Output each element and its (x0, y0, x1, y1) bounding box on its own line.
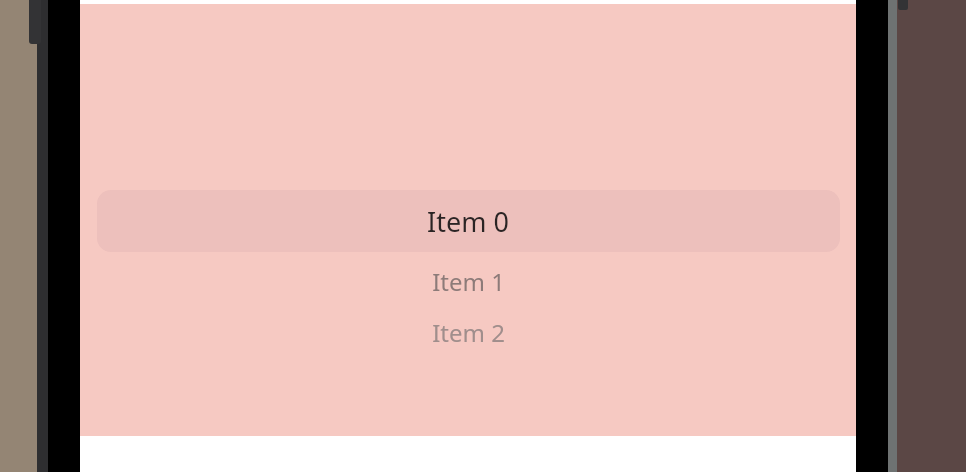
staticText: Item 0 (427, 203, 509, 240)
staticText: Item 2 (432, 316, 505, 349)
staticText: Item 1 (432, 265, 505, 298)
button[interactable] (97, 190, 840, 252)
button[interactable]: Item 0 (80, 201, 856, 241)
button[interactable]: Item 2 (80, 314, 856, 350)
button[interactable]: Item 1 (80, 263, 856, 299)
